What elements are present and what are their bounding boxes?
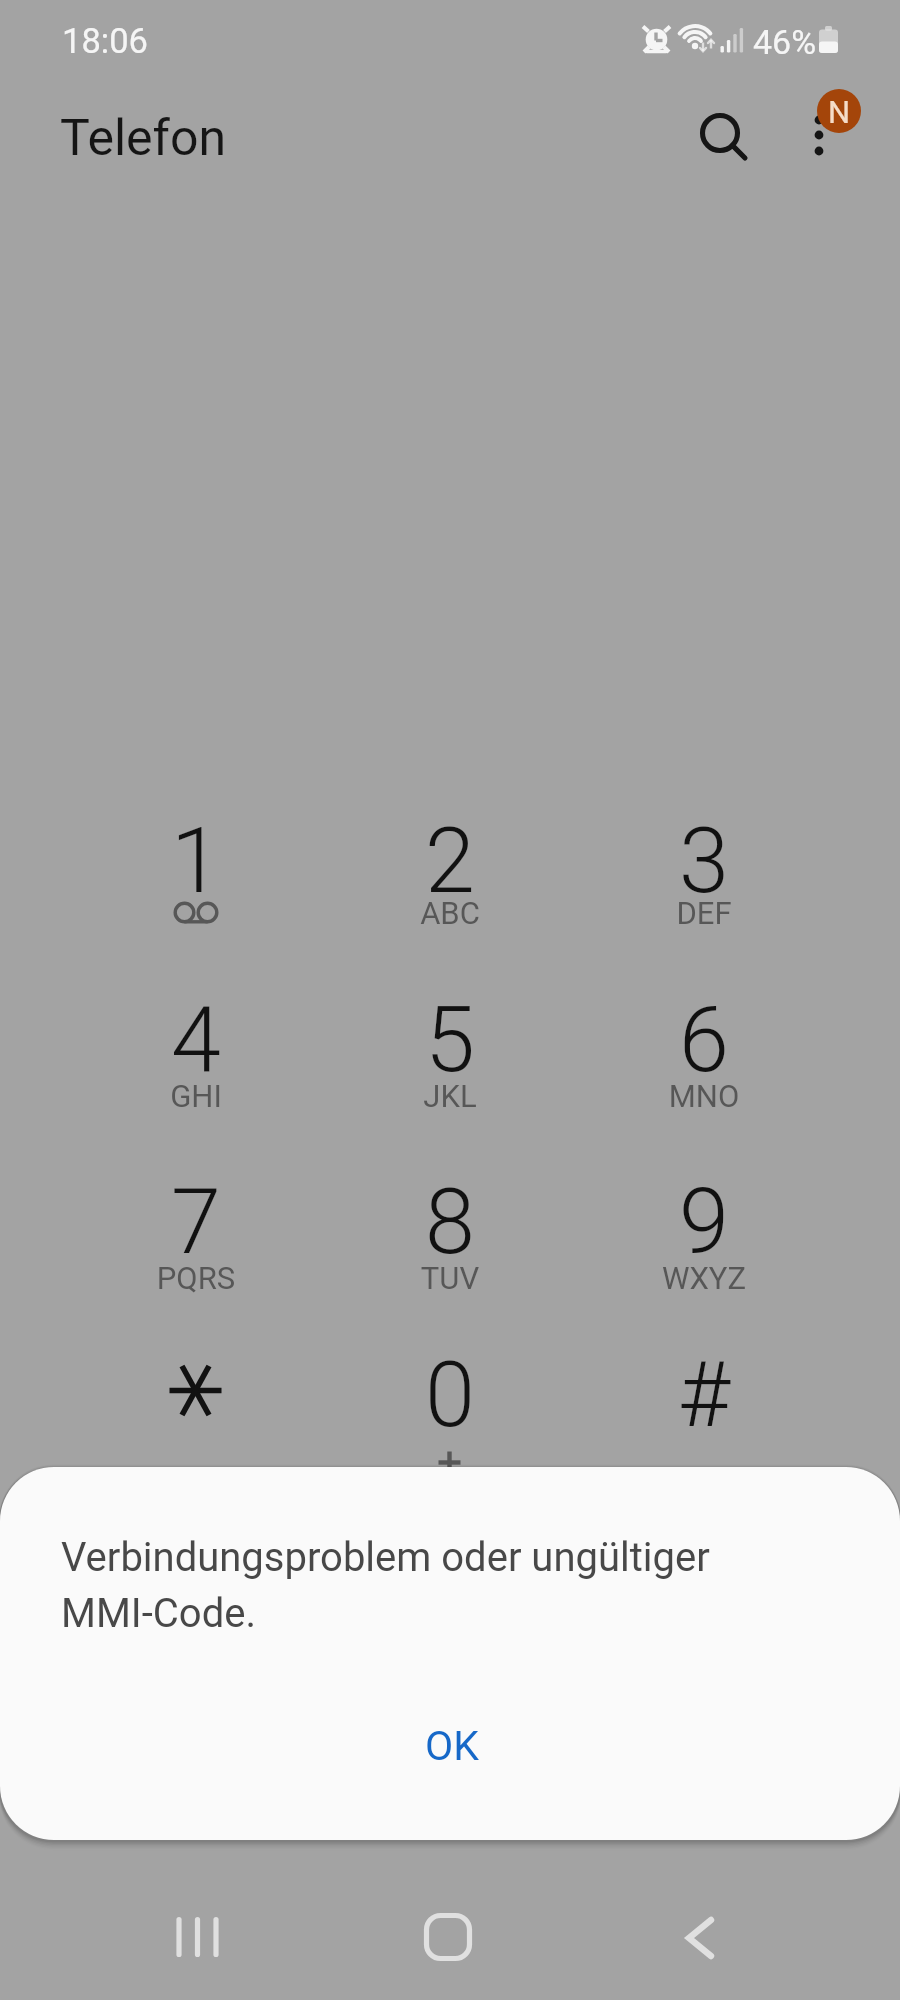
button[interactable]: 5 JKL	[358, 962, 542, 1122]
staticText: OK	[425, 1722, 479, 1770]
staticText: ABC	[358, 895, 542, 931]
staticText: MNO	[612, 1078, 796, 1114]
staticText: 6	[612, 988, 796, 1093]
staticText: 3	[612, 809, 796, 914]
staticText: 4	[104, 988, 288, 1093]
button[interactable]: 9 WXYZ	[612, 1144, 796, 1304]
staticText: 2	[358, 809, 542, 914]
button[interactable]: 1 voicemail	[104, 783, 288, 943]
button[interactable]: OK	[367, 1698, 537, 1794]
button[interactable]: 0	[358, 1317, 542, 1477]
button[interactable]: Dialog scrim	[0, 0, 900, 2000]
button[interactable]: Star	[104, 1317, 288, 1477]
staticText: 8	[358, 1170, 542, 1275]
staticText: MMI-Code.	[61, 1590, 900, 1637]
button[interactable]: Hash	[612, 1317, 796, 1477]
staticText: DEF	[612, 895, 796, 931]
button[interactable]: More options	[774, 78, 884, 188]
staticText: 46%	[753, 22, 817, 62]
staticText: 5	[358, 988, 542, 1093]
button[interactable]: 3 DEF	[612, 783, 796, 943]
button[interactable]: 4 GHI	[104, 962, 288, 1122]
staticText: #	[612, 1343, 796, 1448]
staticText: TUV	[358, 1260, 542, 1296]
staticText: 9	[612, 1170, 796, 1275]
staticText: 0	[358, 1343, 542, 1448]
staticText: Telefon	[60, 109, 227, 168]
staticText: 1	[104, 809, 288, 914]
staticText: GHI	[104, 1078, 288, 1114]
staticText: 18:06	[62, 21, 148, 61]
staticText: 7	[104, 1170, 288, 1275]
button[interactable]: Back	[650, 1890, 750, 1984]
button[interactable]: 8 TUV	[358, 1144, 542, 1304]
button[interactable]: 2 ABC	[358, 783, 542, 943]
staticText: Verbindungsproblem oder ungültiger	[61, 1534, 900, 1581]
staticText: PQRS	[104, 1260, 288, 1296]
button[interactable]: Recent apps	[147, 1890, 247, 1984]
staticText: N	[819, 94, 859, 130]
button[interactable]: 6 MNO	[612, 962, 796, 1122]
staticText: WXYZ	[612, 1260, 796, 1296]
staticText: JKL	[358, 1078, 542, 1114]
button[interactable]: Home	[398, 1890, 498, 1984]
button[interactable]: 7 PQRS	[104, 1144, 288, 1304]
button[interactable]: Search	[674, 87, 766, 179]
